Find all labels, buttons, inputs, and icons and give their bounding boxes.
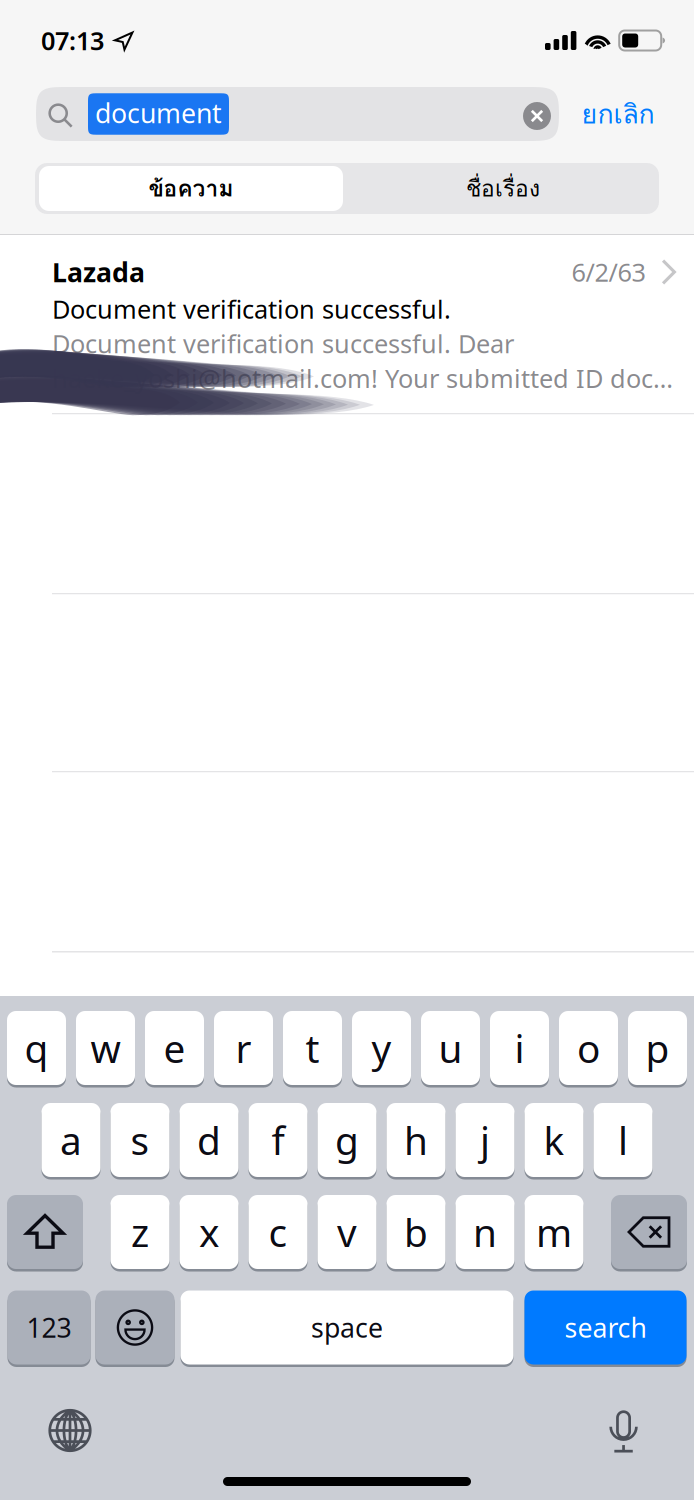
- button[interactable]: q: [7, 1011, 66, 1087]
- button[interactable]: e: [145, 1011, 204, 1087]
- staticText: Document verification successful.: [52, 292, 451, 326]
- staticText: d: [197, 1114, 221, 1166]
- staticText: document: [95, 95, 222, 131]
- staticText: k: [543, 1114, 564, 1166]
- staticText: Document verification successful. Dear: [52, 327, 514, 360]
- staticText: 6/2/63: [571, 255, 645, 289]
- button[interactable]: ยกเลิก: [580, 91, 656, 137]
- button[interactable]: g: [317, 1103, 376, 1179]
- staticText: i: [514, 1022, 524, 1074]
- button[interactable]: y: [352, 1011, 411, 1087]
- staticText: ชื่อเรื่อง: [466, 171, 540, 206]
- staticText: n: [473, 1206, 497, 1258]
- staticText: z: [131, 1206, 149, 1258]
- staticText: m: [536, 1206, 572, 1258]
- button[interactable]: z: [110, 1195, 169, 1271]
- staticText: x: [199, 1206, 219, 1258]
- button[interactable]: Emoji: [95, 1290, 174, 1367]
- button[interactable]: space: [180, 1290, 513, 1367]
- staticText: e: [163, 1022, 185, 1074]
- staticText: u: [438, 1022, 462, 1074]
- button[interactable]: r: [214, 1011, 273, 1087]
- staticText: b: [404, 1206, 428, 1258]
- button[interactable]: p: [628, 1011, 687, 1087]
- button[interactable]: t: [283, 1011, 342, 1087]
- button[interactable]: m: [524, 1195, 583, 1271]
- button[interactable]: ข้อความ: [35, 163, 347, 214]
- button[interactable]: w: [76, 1011, 135, 1087]
- button[interactable]: 123: [7, 1290, 90, 1367]
- staticText: y: [371, 1022, 391, 1074]
- button[interactable]: x: [179, 1195, 238, 1271]
- button[interactable]: a: [41, 1103, 100, 1179]
- staticText: r: [235, 1022, 251, 1074]
- button[interactable]: u: [421, 1011, 480, 1087]
- button[interactable]: v: [317, 1195, 376, 1271]
- staticText: p: [645, 1022, 669, 1074]
- button[interactable]: Dictate: [607, 1407, 640, 1454]
- button[interactable]: i: [490, 1011, 549, 1087]
- button[interactable]: document: [36, 87, 559, 141]
- button[interactable]: h: [386, 1103, 445, 1179]
- staticText: c: [268, 1206, 287, 1258]
- button[interactable]: Change keyboard: [48, 1408, 92, 1452]
- staticText: 123: [26, 1310, 71, 1345]
- staticText: ยกเลิก: [581, 93, 654, 135]
- staticText: space: [311, 1310, 383, 1345]
- button[interactable]: k: [524, 1103, 583, 1179]
- staticText: search: [564, 1310, 646, 1345]
- staticText: f: [271, 1114, 284, 1166]
- staticText: q: [24, 1022, 48, 1074]
- button[interactable]: n: [455, 1195, 514, 1271]
- button[interactable]: j: [455, 1103, 514, 1179]
- staticText: w: [90, 1022, 120, 1074]
- button[interactable]: f: [248, 1103, 307, 1179]
- button[interactable]: ชื่อเรื่อง: [347, 163, 659, 214]
- button[interactable]: c: [248, 1195, 307, 1271]
- staticText: Lazada: [52, 254, 145, 290]
- staticText: haeke_yoshi@hotmail.com! Your submitted …: [52, 361, 676, 395]
- button[interactable]: Shift: [7, 1195, 83, 1271]
- staticText: v: [337, 1206, 357, 1258]
- staticText: t: [305, 1022, 319, 1074]
- staticText: 07:13: [41, 24, 104, 57]
- staticText: a: [60, 1114, 82, 1166]
- button[interactable]: s: [110, 1103, 169, 1179]
- staticText: ข้อความ: [148, 171, 233, 206]
- button[interactable]: d: [179, 1103, 238, 1179]
- button[interactable]: l: [593, 1103, 652, 1179]
- staticText: j: [480, 1114, 490, 1166]
- button[interactable]: search: [524, 1290, 686, 1367]
- staticText: l: [618, 1114, 628, 1166]
- button[interactable]: Delete: [611, 1195, 687, 1271]
- staticText: o: [577, 1022, 600, 1074]
- button[interactable]: b: [386, 1195, 445, 1271]
- button[interactable]: o: [559, 1011, 618, 1087]
- staticText: g: [335, 1114, 359, 1166]
- staticText: h: [404, 1114, 428, 1166]
- button[interactable]: Lazada: [0, 235, 694, 413]
- staticText: s: [130, 1114, 149, 1166]
